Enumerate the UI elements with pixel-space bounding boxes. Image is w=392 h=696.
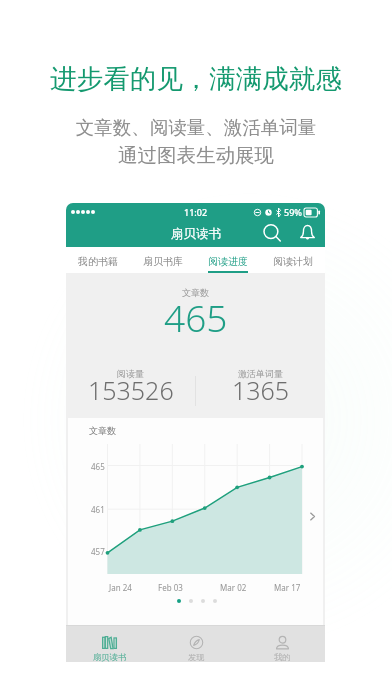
staticText: 457 (91, 546, 105, 557)
staticText: 文章数 (182, 287, 209, 298)
button[interactable]: 发现 (153, 626, 239, 662)
staticText: 我的 (274, 652, 291, 662)
staticText: 153526 (88, 373, 174, 407)
staticText: 461 (91, 504, 105, 515)
button[interactable]: Notifications (296, 221, 318, 243)
button[interactable]: Next chart (306, 510, 319, 523)
button[interactable]: 阅读进度 (195, 247, 260, 273)
button[interactable]: 扇贝书库 (130, 247, 195, 273)
button[interactable]: 我的书籍 (66, 247, 130, 273)
staticText: Jan 24 (109, 582, 132, 593)
staticText: 11:02 (184, 206, 208, 218)
staticText: 阅读计划 (273, 255, 313, 268)
button[interactable]: 扇贝读书 (66, 626, 153, 662)
staticText: 发现 (188, 652, 205, 662)
staticText: 激活单词量 (238, 368, 283, 379)
staticText: 1365 (232, 373, 290, 407)
button[interactable]: Search (261, 222, 283, 244)
staticText: Mar 17 (274, 582, 301, 593)
staticText: 进步看的见，满满成就感 (0, 62, 392, 95)
staticText: 文章数、阅读量、激活单词量 (0, 116, 392, 139)
staticText: 我的书籍 (78, 255, 118, 268)
staticText: 465 (164, 292, 228, 342)
staticText: Mar 02 (220, 582, 247, 593)
staticText: Feb 03 (158, 582, 183, 593)
button[interactable]: 我的 (239, 626, 325, 662)
staticText: 扇贝书库 (143, 255, 183, 268)
staticText: 59% (284, 206, 302, 218)
staticText: 扇贝读书 (171, 226, 221, 242)
staticText: 扇贝读书 (93, 652, 127, 662)
staticText: 阅读进度 (208, 255, 248, 268)
staticText: 465 (91, 461, 105, 472)
staticText: 文章数 (89, 425, 116, 436)
staticText: 阅读量 (117, 368, 144, 379)
staticText: 通过图表生动展现 (0, 143, 392, 168)
button[interactable]: 阅读计划 (260, 247, 325, 273)
